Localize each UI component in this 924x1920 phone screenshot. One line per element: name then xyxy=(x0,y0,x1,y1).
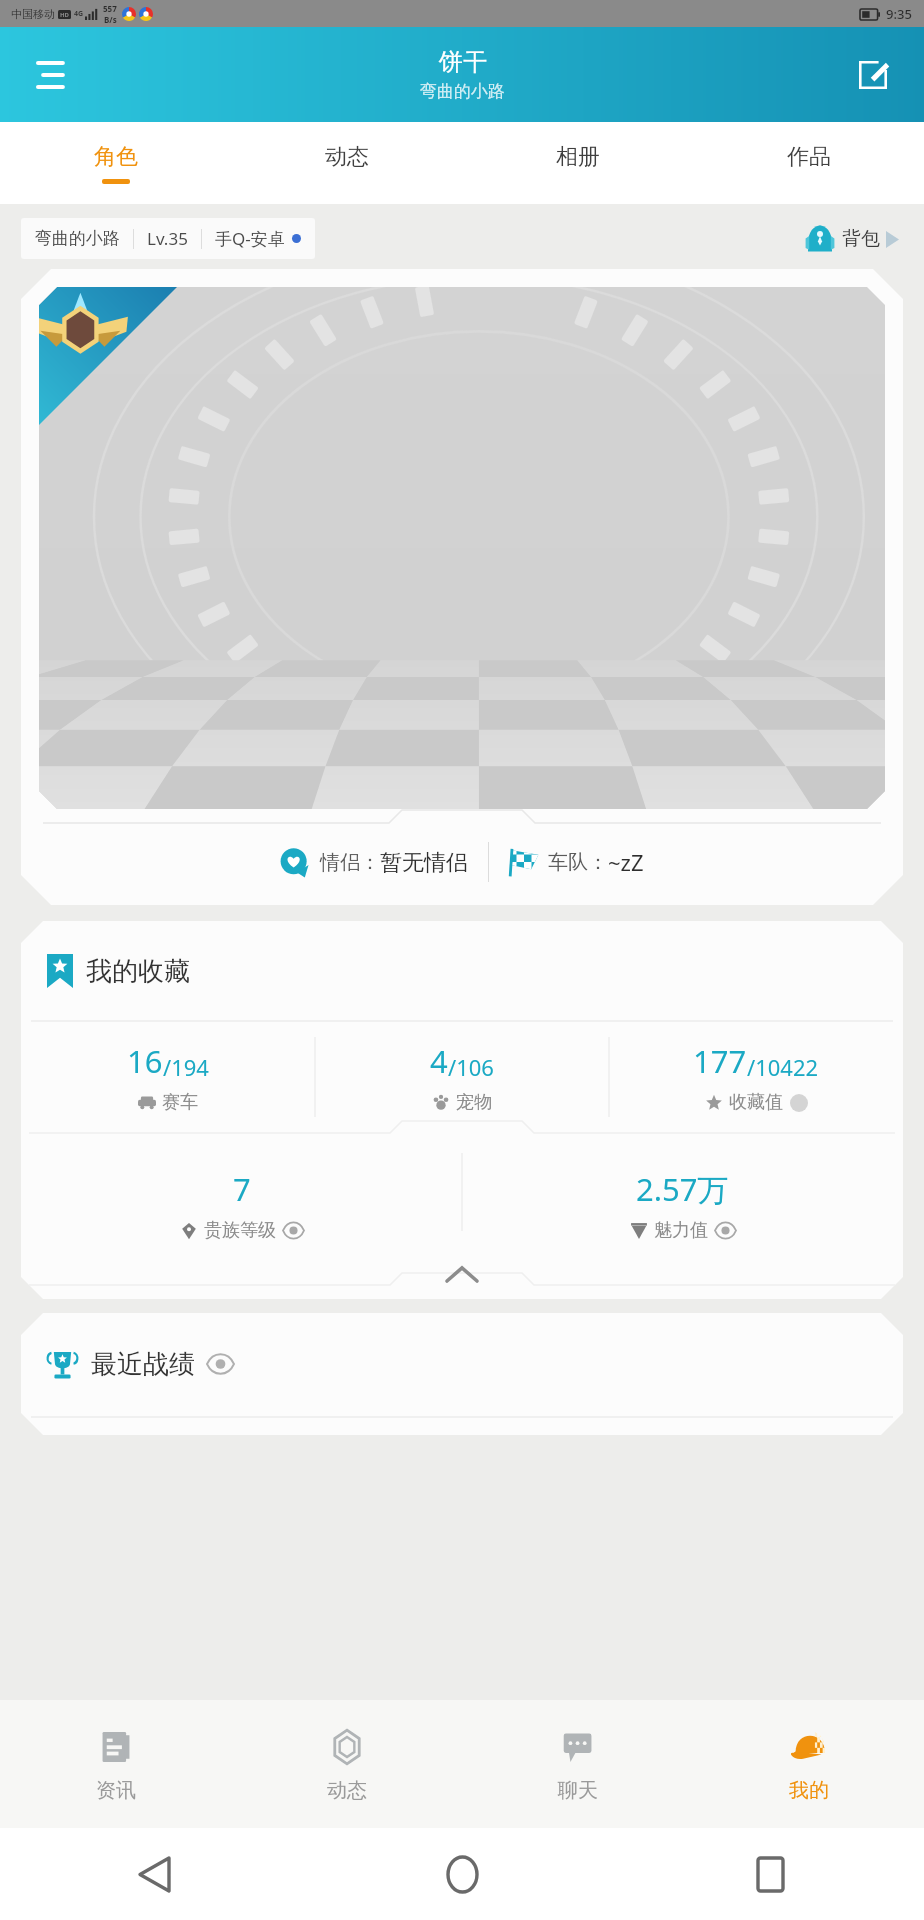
staticText: 2.57万 xyxy=(636,1168,729,1210)
button[interactable]: 车队： xyxy=(503,841,650,883)
staticText: 资讯 xyxy=(96,1778,136,1803)
staticText: B/s xyxy=(104,14,117,25)
staticText: 4 xyxy=(430,1040,448,1082)
staticText: 赛车 xyxy=(162,1091,198,1114)
button[interactable]: 相册 xyxy=(462,122,693,204)
button[interactable]: 2.57万 xyxy=(462,1149,903,1261)
staticText: 情侣： xyxy=(320,850,380,875)
button[interactable]: 16 xyxy=(21,1021,315,1133)
button[interactable]: 4 xyxy=(315,1021,609,1133)
button[interactable]: 角色 xyxy=(0,122,231,204)
staticText: 暂无情侣 xyxy=(380,849,468,877)
button[interactable]: Back xyxy=(118,1838,190,1910)
button[interactable]: 背包 xyxy=(801,220,903,258)
staticText: Lv.35 xyxy=(147,227,188,250)
button[interactable]: Recents xyxy=(734,1838,806,1910)
staticText: 背包 xyxy=(842,227,880,251)
staticText: /194 xyxy=(163,1052,209,1082)
staticText: /10422 xyxy=(747,1052,819,1082)
staticText: 动态 xyxy=(327,1778,367,1803)
staticText: 贵族等级 xyxy=(204,1219,276,1242)
staticText: 聊天 xyxy=(558,1778,598,1803)
button[interactable]: 我的 xyxy=(693,1700,924,1828)
staticText: /106 xyxy=(448,1052,494,1082)
button[interactable]: 情侣： xyxy=(21,269,903,905)
staticText: 16 xyxy=(127,1040,163,1082)
staticText: 动态 xyxy=(325,143,369,171)
staticText: ~zZ xyxy=(608,847,644,877)
button[interactable]: 177 xyxy=(609,1021,903,1133)
staticText: 宠物 xyxy=(456,1091,492,1114)
button[interactable]: 最近战绩 xyxy=(21,1313,903,1415)
staticText: 弯曲的小路 xyxy=(420,81,505,102)
staticText: 相册 xyxy=(556,143,600,171)
staticText: 7 xyxy=(233,1168,251,1210)
staticText: 557 xyxy=(103,3,117,14)
button[interactable]: 我的收藏 xyxy=(21,921,903,1021)
staticText: 我的收藏 xyxy=(86,955,190,988)
button[interactable]: 资讯 xyxy=(0,1700,231,1828)
staticText: 收藏值 xyxy=(729,1091,783,1114)
staticText: 车队： xyxy=(548,850,608,875)
staticText: 魅力值 xyxy=(654,1219,708,1242)
staticText: 手Q-安卓 xyxy=(215,227,285,250)
staticText: 角色 xyxy=(94,143,138,171)
button[interactable]: 情侣： xyxy=(274,841,474,884)
button[interactable]: 聊天 xyxy=(462,1700,693,1828)
staticText: 中国移动 xyxy=(11,7,55,21)
button[interactable]: 作品 xyxy=(693,122,924,204)
staticText: 177 xyxy=(693,1040,747,1082)
staticText: 4G xyxy=(74,9,84,19)
button[interactable]: Menu xyxy=(26,48,80,102)
staticText: HD xyxy=(60,11,69,19)
button[interactable]: 弯曲的小路 xyxy=(21,218,315,259)
button[interactable]: 7 xyxy=(21,1149,462,1261)
button[interactable]: Home xyxy=(426,1838,498,1910)
staticText: 作品 xyxy=(787,143,831,171)
button[interactable]: 动态 xyxy=(231,1700,462,1828)
staticText: 弯曲的小路 xyxy=(35,228,120,249)
staticText: 我的 xyxy=(789,1778,829,1803)
button[interactable]: 动态 xyxy=(231,122,462,204)
button[interactable]: Edit profile xyxy=(848,50,898,100)
staticText: 最近战绩 xyxy=(91,1348,195,1381)
staticText: 饼干 xyxy=(439,47,487,77)
staticText: 9:35 xyxy=(886,5,912,23)
